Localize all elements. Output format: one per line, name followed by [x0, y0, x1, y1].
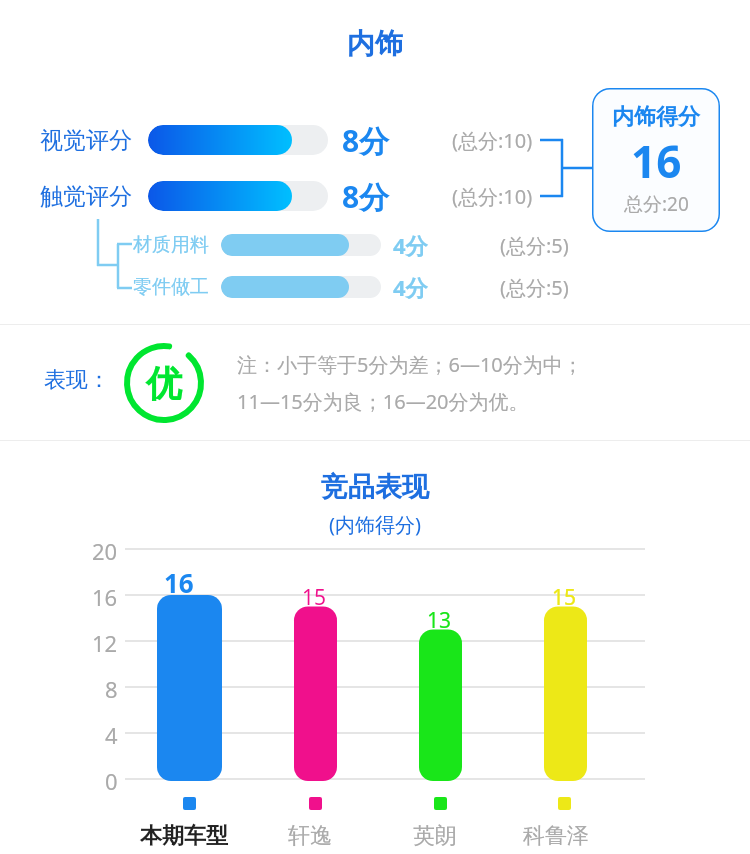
- button[interactable]: 轩逸: [288, 822, 332, 850]
- staticText: 总分:20: [624, 191, 689, 217]
- staticText: 11—15分为良；16—20分为优。: [237, 388, 529, 415]
- staticText: 4: [105, 720, 118, 750]
- button[interactable]: 英朗: [413, 822, 457, 850]
- staticText: 12: [92, 628, 118, 658]
- staticText: 15: [552, 583, 577, 612]
- other: 评级 优: [120, 339, 208, 427]
- staticText: 8分: [342, 120, 390, 161]
- staticText: 注：小于等于5分为差；6—10分为中；: [237, 351, 583, 378]
- staticText: 20: [92, 536, 118, 566]
- button[interactable]: 零件做工: [133, 271, 483, 303]
- staticText: 材质用料: [133, 233, 209, 257]
- staticText: (总分:10): [452, 183, 533, 210]
- staticText: (总分:5): [500, 232, 569, 259]
- staticText: 13: [427, 606, 452, 635]
- staticText: 英朗: [413, 822, 457, 850]
- button[interactable]: 内饰得分: [592, 88, 720, 232]
- staticText: 竞品表现: [321, 470, 429, 504]
- staticText: (总分:5): [500, 274, 569, 301]
- button[interactable]: 视觉评分: [40, 119, 430, 161]
- staticText: 零件做工: [133, 275, 209, 299]
- staticText: 内饰得分: [612, 103, 700, 131]
- staticText: 8: [105, 674, 118, 704]
- staticText: 0: [105, 766, 118, 796]
- button[interactable]: 科鲁泽: [523, 822, 589, 850]
- staticText: 触觉评分: [40, 182, 132, 211]
- staticText: 内饰: [347, 26, 403, 61]
- staticText: 视觉评分: [40, 126, 132, 155]
- staticText: 4分: [393, 272, 428, 302]
- staticText: 8分: [342, 176, 390, 217]
- staticText: 16: [164, 565, 194, 600]
- staticText: 15: [302, 583, 327, 612]
- staticText: 16: [631, 131, 682, 191]
- staticText: 科鲁泽: [523, 822, 589, 850]
- staticText: 本期车型: [140, 822, 228, 850]
- staticText: 优: [146, 361, 182, 406]
- staticText: (内饰得分): [329, 511, 421, 538]
- staticText: 16: [92, 582, 118, 612]
- staticText: 表现：: [44, 366, 110, 394]
- staticText: 4分: [393, 230, 428, 260]
- button[interactable]: 触觉评分: [40, 175, 430, 217]
- staticText: 轩逸: [288, 822, 332, 850]
- button[interactable]: 材质用料: [133, 229, 483, 261]
- button[interactable]: 本期车型: [140, 822, 228, 850]
- staticText: (总分:10): [452, 127, 533, 154]
